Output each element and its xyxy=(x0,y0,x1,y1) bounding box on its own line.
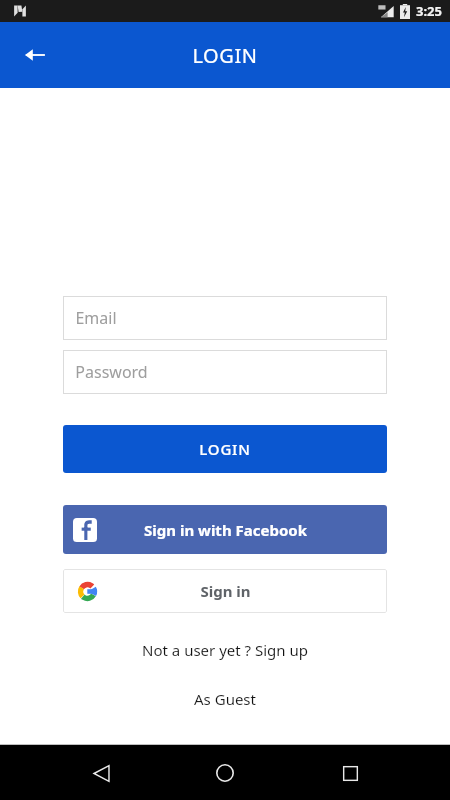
staticText: 3:25 xyxy=(416,2,442,20)
button[interactable]: Sign in with Facebook xyxy=(63,505,387,554)
staticText: LOGIN xyxy=(192,42,258,69)
button[interactable]: Not a user yet ? Sign up xyxy=(0,640,450,660)
button[interactable]: Home xyxy=(201,749,249,797)
staticText: Email xyxy=(75,307,117,329)
staticText: Password xyxy=(75,361,148,383)
button[interactable]: As Guest xyxy=(0,689,450,709)
staticText: Not a user yet ? Sign up xyxy=(142,640,308,660)
staticText: Sign in with Facebook xyxy=(144,520,307,540)
staticText: As Guest xyxy=(194,689,256,709)
button[interactable]: LOGIN xyxy=(63,425,387,473)
button[interactable]: Email xyxy=(63,296,387,340)
button[interactable]: Password xyxy=(63,350,387,394)
staticText: LOGIN xyxy=(199,439,251,459)
button[interactable]: Recent apps xyxy=(326,749,374,797)
button[interactable]: Sign in xyxy=(63,569,387,613)
button[interactable]: Back xyxy=(14,34,56,76)
staticText: Sign in xyxy=(200,581,251,601)
button[interactable]: Back xyxy=(77,749,125,797)
